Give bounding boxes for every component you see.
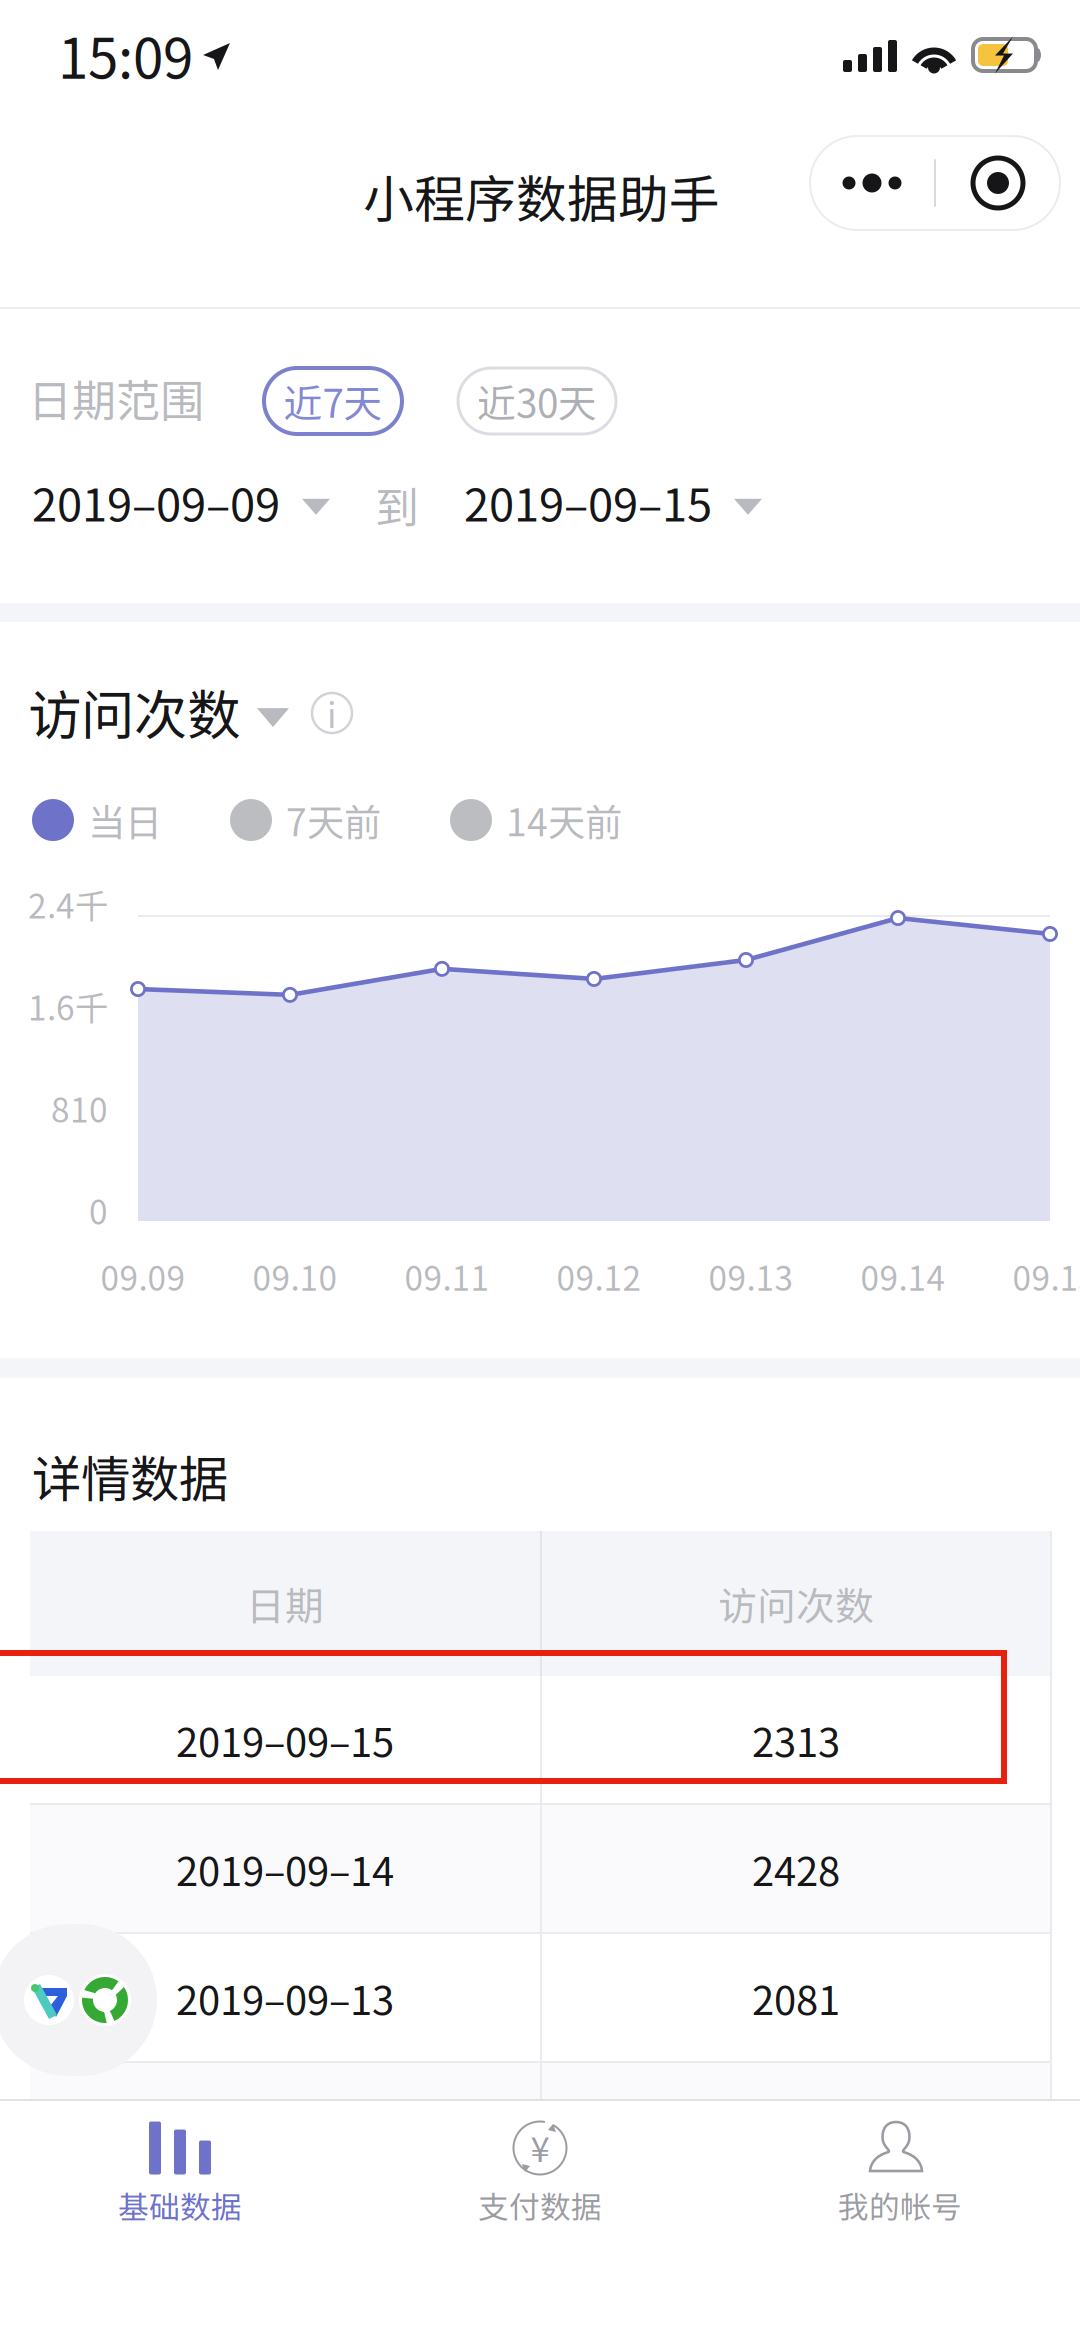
button[interactable]: ¥ <box>360 2119 720 2279</box>
button[interactable]: 近7天 <box>264 368 402 434</box>
button[interactable]: 访问次数 <box>28 673 289 750</box>
staticText: 基础数据 <box>118 2183 242 2227</box>
button[interactable]: Info <box>308 689 356 737</box>
button[interactable]: Close mini program <box>936 136 1060 230</box>
staticText: 09.13 <box>708 1252 793 1300</box>
staticText: 1.6千 <box>28 982 108 1030</box>
staticText: 小程序数据助手 <box>363 159 720 232</box>
staticText: 14天前 <box>506 793 622 847</box>
staticText: 09.12 <box>556 1252 641 1300</box>
staticText: 2019–09–09 <box>32 469 280 535</box>
button[interactable]: Mini program tools <box>0 1924 157 2076</box>
staticText: 2019–09–15 <box>176 1710 394 1768</box>
staticText: 09.11 <box>404 1252 489 1300</box>
button[interactable]: 2019–09–14 <box>30 1805 1050 1932</box>
staticText: 2019–09–13 <box>176 1968 394 2026</box>
staticText: 15:09 <box>58 15 193 95</box>
staticText: 09.15 <box>1012 1252 1080 1300</box>
staticText: 09.14 <box>860 1252 945 1300</box>
staticText: 2019–09–14 <box>176 1839 394 1897</box>
staticText: 2081 <box>752 1968 840 2026</box>
staticText: 到 <box>375 473 419 537</box>
staticText: ¥ <box>530 2122 549 2172</box>
button[interactable]: 2019–09–15 <box>30 1676 1050 1803</box>
staticText: 日期 <box>246 1575 324 1631</box>
button[interactable]: 近30天 <box>458 368 616 434</box>
staticText: 访问次数 <box>28 673 240 750</box>
staticText: 近30天 <box>477 373 597 429</box>
button[interactable]: More <box>810 136 934 230</box>
button[interactable]: 2019–09–13 <box>30 1934 1050 2061</box>
button[interactable]: 2019–09–15 <box>464 469 762 535</box>
staticText: 支付数据 <box>478 2183 602 2227</box>
staticText: 我的帐号 <box>838 2183 962 2227</box>
staticText: 近7天 <box>283 373 382 429</box>
button[interactable]: 基础数据 <box>0 2119 360 2279</box>
staticText: 2.4千 <box>28 880 108 928</box>
button[interactable]: 我的帐号 <box>720 2119 1080 2279</box>
staticText: 2313 <box>752 1710 840 1768</box>
staticText: 0 <box>89 1186 108 1234</box>
staticText: i <box>327 688 337 738</box>
button[interactable] <box>30 2063 1050 2190</box>
staticText: 810 <box>51 1084 108 1132</box>
staticText: 日期范围 <box>28 366 204 430</box>
staticText: 当日 <box>88 793 162 847</box>
staticText: 09.09 <box>100 1252 185 1300</box>
staticText: 访问次数 <box>718 1575 874 1631</box>
staticText: 详情数据 <box>32 1440 228 1511</box>
staticText: 7天前 <box>286 793 381 847</box>
staticText: 2428 <box>752 1839 840 1897</box>
button[interactable]: 2019–09–09 <box>32 469 330 535</box>
staticText: 09.10 <box>252 1252 337 1300</box>
staticText: 2019–09–15 <box>464 469 712 535</box>
